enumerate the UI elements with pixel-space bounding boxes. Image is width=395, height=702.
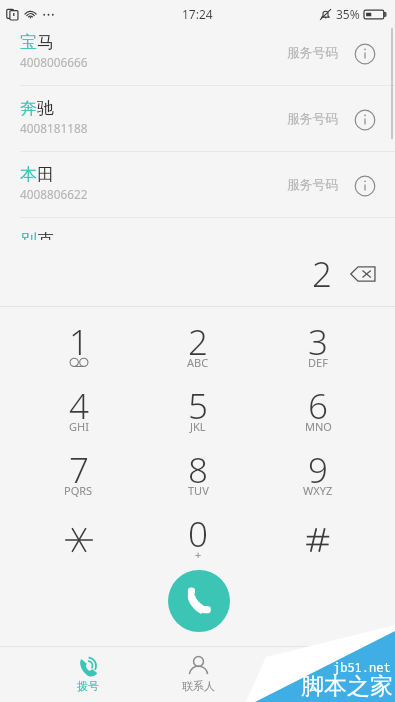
- button[interactable]: [258, 510, 378, 574]
- button[interactable]: 宝马: [0, 28, 395, 86]
- button[interactable]: Call: [168, 570, 230, 632]
- staticText: 本田: [20, 164, 54, 185]
- staticText: MNO: [305, 419, 332, 434]
- button[interactable]: 2: [138, 318, 258, 382]
- button[interactable]: [19, 510, 138, 574]
- staticText: 4: [69, 382, 89, 430]
- button[interactable]: 9: [258, 446, 378, 510]
- staticText: +: [195, 547, 202, 562]
- staticText: 9: [308, 446, 328, 494]
- staticText: 服务号码: [287, 45, 339, 61]
- staticText: 联系人: [182, 679, 215, 693]
- button[interactable]: Delete: [350, 265, 376, 283]
- staticText: PQRS: [64, 483, 93, 498]
- staticText: TUV: [188, 483, 209, 498]
- staticText: 2: [188, 318, 208, 366]
- button[interactable]: 5: [138, 382, 258, 446]
- button[interactable]: Details: [354, 43, 375, 64]
- staticText: 8: [188, 446, 208, 494]
- staticText: 3: [308, 318, 328, 366]
- staticText: 0: [188, 510, 208, 558]
- button[interactable]: 别克: [0, 218, 395, 240]
- staticText: 4008806622: [20, 186, 88, 202]
- staticText: GHI: [69, 419, 89, 434]
- staticText: 别克: [20, 230, 54, 240]
- button[interactable]: 本田: [0, 152, 395, 218]
- staticText: 6: [308, 382, 328, 430]
- staticText: JKL: [190, 419, 206, 434]
- staticText: 2: [312, 250, 332, 298]
- button[interactable]: 6: [258, 382, 378, 446]
- button[interactable]: 拨号: [32, 647, 143, 702]
- button[interactable]: 8: [138, 446, 258, 510]
- staticText: 奔驰: [20, 98, 54, 119]
- staticText: 宝马: [20, 32, 54, 53]
- staticText: 服务号码: [287, 111, 339, 127]
- button[interactable]: 奔驰: [0, 86, 395, 152]
- staticText: 4008006666: [20, 54, 88, 70]
- button[interactable]: 7: [19, 446, 138, 510]
- button[interactable]: 3: [258, 318, 378, 382]
- button[interactable]: 联系人: [143, 647, 253, 702]
- staticText: 17:24: [182, 6, 213, 22]
- staticText: DEF: [308, 355, 328, 370]
- staticText: 35%: [336, 6, 360, 22]
- staticText: 4008181188: [20, 120, 88, 136]
- staticText: 1: [69, 318, 89, 366]
- button[interactable]: 4: [19, 382, 138, 446]
- staticText: 服务号码: [287, 177, 339, 193]
- button[interactable]: Details: [354, 175, 375, 196]
- staticText: 5: [188, 382, 208, 430]
- staticText: jb51.net: [333, 659, 391, 675]
- button[interactable]: 1: [19, 318, 138, 382]
- staticText: 拨号: [77, 679, 99, 693]
- staticText: 脚本之家: [301, 672, 393, 701]
- staticText: 7: [69, 446, 89, 494]
- button[interactable]: Details: [354, 109, 375, 130]
- staticText: ABC: [187, 355, 209, 370]
- button[interactable]: 0: [138, 510, 258, 574]
- staticText: WXYZ: [303, 483, 333, 498]
